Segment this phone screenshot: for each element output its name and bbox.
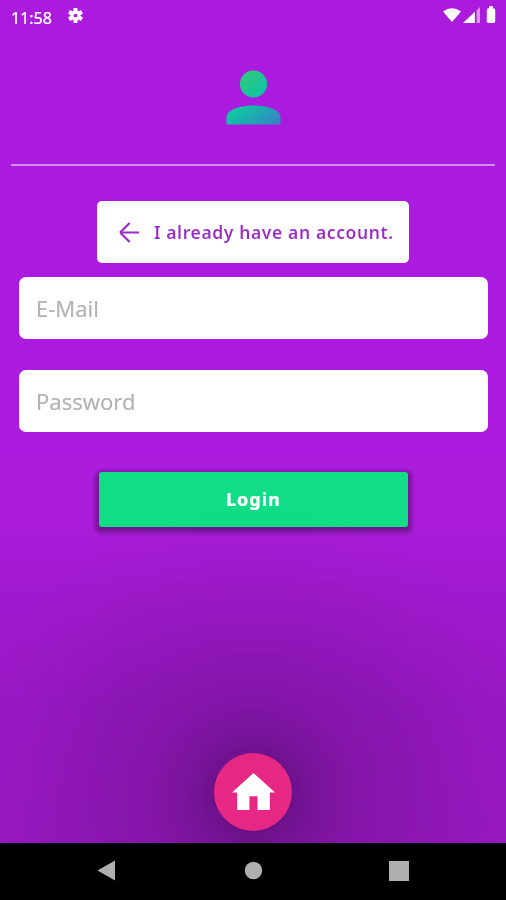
staticText: E-Mail xyxy=(36,293,99,323)
button[interactable]: Home xyxy=(214,753,292,831)
button[interactable]: Password xyxy=(19,370,488,432)
staticText: Login xyxy=(226,487,281,512)
staticText: 11:58 xyxy=(11,7,52,29)
button[interactable]: I already have an account. xyxy=(97,201,409,263)
button[interactable]: E-Mail xyxy=(19,277,488,339)
button[interactable]: Login xyxy=(99,472,408,527)
staticText: Password xyxy=(36,386,136,416)
staticText: I already have an account. xyxy=(154,220,394,244)
